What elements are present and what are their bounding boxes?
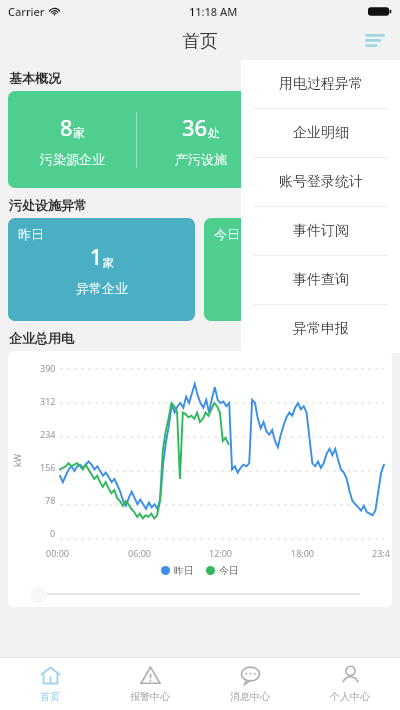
staticText: 产污设施 xyxy=(175,151,227,167)
staticText: 156 xyxy=(40,461,56,473)
staticText: 11:18 AM xyxy=(189,4,238,19)
staticText: 污处设施 xyxy=(303,151,355,167)
button[interactable]: 事件订阅 xyxy=(241,207,400,255)
staticText: 0 xyxy=(286,243,299,272)
staticText: 异常申报 xyxy=(293,320,349,338)
staticText: 事件订阅 xyxy=(293,222,349,240)
staticText: 23:4 xyxy=(372,547,390,559)
button[interactable]: 事件查询 xyxy=(241,256,400,304)
staticText: 企业明细 xyxy=(293,124,349,142)
staticText: 首页 xyxy=(182,30,218,53)
button[interactable]: 用电过程异常 xyxy=(241,60,400,108)
staticText: 今日 xyxy=(219,564,239,577)
button[interactable]: 消息中心 xyxy=(200,658,300,710)
staticText: 污染源企业 xyxy=(40,151,105,167)
staticText: Carrier xyxy=(8,4,45,19)
staticText: 昨日 xyxy=(18,226,44,242)
button[interactable]: 报警中心 xyxy=(100,658,200,710)
staticText: 首页 xyxy=(40,690,60,703)
staticText: 消息中心 xyxy=(230,690,270,703)
staticText: 18:00 xyxy=(291,547,315,559)
staticText: 用电过程异常 xyxy=(279,75,363,93)
button[interactable]: 个人中心 xyxy=(300,658,400,710)
staticText: 昨日 xyxy=(174,564,194,577)
staticText: 异常企业 xyxy=(76,280,128,296)
staticText: 家 xyxy=(73,125,85,140)
staticText: 1 xyxy=(90,243,103,272)
button[interactable]: 异常申报 xyxy=(241,305,400,353)
staticText: 00:00 xyxy=(46,547,70,559)
staticText: 12:00 xyxy=(209,547,233,559)
staticText: 234 xyxy=(40,428,56,440)
button[interactable]: 企业明细 xyxy=(241,109,400,157)
staticText: 312 xyxy=(40,395,56,407)
button[interactable]: 今日 xyxy=(204,218,392,321)
staticText: 06:00 xyxy=(128,547,152,559)
staticText: 账号登录统计 xyxy=(279,173,363,191)
staticText: 个人中心 xyxy=(330,690,370,703)
button[interactable]: 昨日 xyxy=(8,218,195,321)
button[interactable]: Menu xyxy=(358,24,392,58)
button[interactable]: 8 xyxy=(8,91,392,188)
staticText: kW xyxy=(11,453,23,467)
staticText: 报警中心 xyxy=(130,690,170,703)
staticText: 处 xyxy=(208,125,220,140)
staticText: 污处设施异常 xyxy=(9,197,87,213)
staticText: 今日 xyxy=(214,226,240,242)
staticText: 事件查询 xyxy=(293,271,349,289)
staticText: 78 xyxy=(45,494,56,506)
staticText: 异常企业 xyxy=(272,280,324,296)
staticText: 0 xyxy=(50,527,56,539)
button[interactable]: 首页 xyxy=(0,658,100,710)
staticText: 基本概况 xyxy=(9,70,61,86)
staticText: 企业总用电 xyxy=(9,330,74,346)
staticText: 390 xyxy=(40,362,56,374)
staticText: 处 xyxy=(336,125,348,140)
staticText: 36 xyxy=(182,112,208,142)
staticText: 家 xyxy=(103,256,114,270)
staticText: 8 xyxy=(60,112,73,142)
staticText: 35 xyxy=(310,112,336,142)
button[interactable]: 账号登录统计 xyxy=(241,158,400,206)
